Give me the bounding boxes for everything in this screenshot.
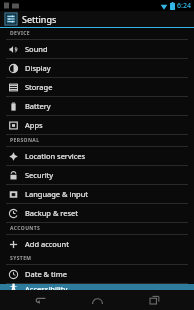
staticText: Battery [25, 101, 51, 111]
button[interactable]: Location services [0, 147, 194, 165]
staticText: SYSTEM [10, 255, 32, 262]
button[interactable]: Home [80, 290, 114, 310]
button[interactable]: Recents [137, 290, 171, 310]
button[interactable]: Language & input [0, 185, 194, 203]
button[interactable]: Display [0, 59, 194, 77]
button[interactable]: Security [0, 166, 194, 184]
staticText: Backup & reset [25, 208, 79, 218]
staticText: Apps [25, 120, 43, 130]
staticText: PERSONAL [10, 137, 40, 144]
staticText: Security [25, 170, 54, 180]
staticText: 6:24 [177, 1, 191, 11]
staticText: Settings [22, 13, 57, 25]
button[interactable]: Sound [0, 40, 194, 58]
staticText: Location services [25, 151, 86, 161]
button[interactable]: Battery [0, 97, 194, 115]
button[interactable]: Backup & reset [0, 204, 194, 222]
staticText: Storage [25, 82, 53, 92]
button[interactable]: Back [23, 290, 57, 310]
button[interactable]: Accessibility [0, 284, 194, 290]
button[interactable]: Settings [0, 11, 194, 27]
button[interactable]: Add account [0, 235, 194, 253]
staticText: Display [25, 63, 51, 73]
staticText: DEVICE [10, 30, 31, 37]
staticText: Sound [25, 44, 48, 54]
button[interactable]: Date & time [0, 265, 194, 283]
staticText: ACCOUNTS [10, 225, 41, 232]
button[interactable]: Apps [0, 116, 194, 134]
button[interactable]: Storage [0, 78, 194, 96]
staticText: Language & input [25, 189, 88, 199]
staticText: Add account [25, 239, 69, 249]
staticText: Date & time [25, 269, 67, 279]
staticText: Accessibility [25, 284, 68, 290]
